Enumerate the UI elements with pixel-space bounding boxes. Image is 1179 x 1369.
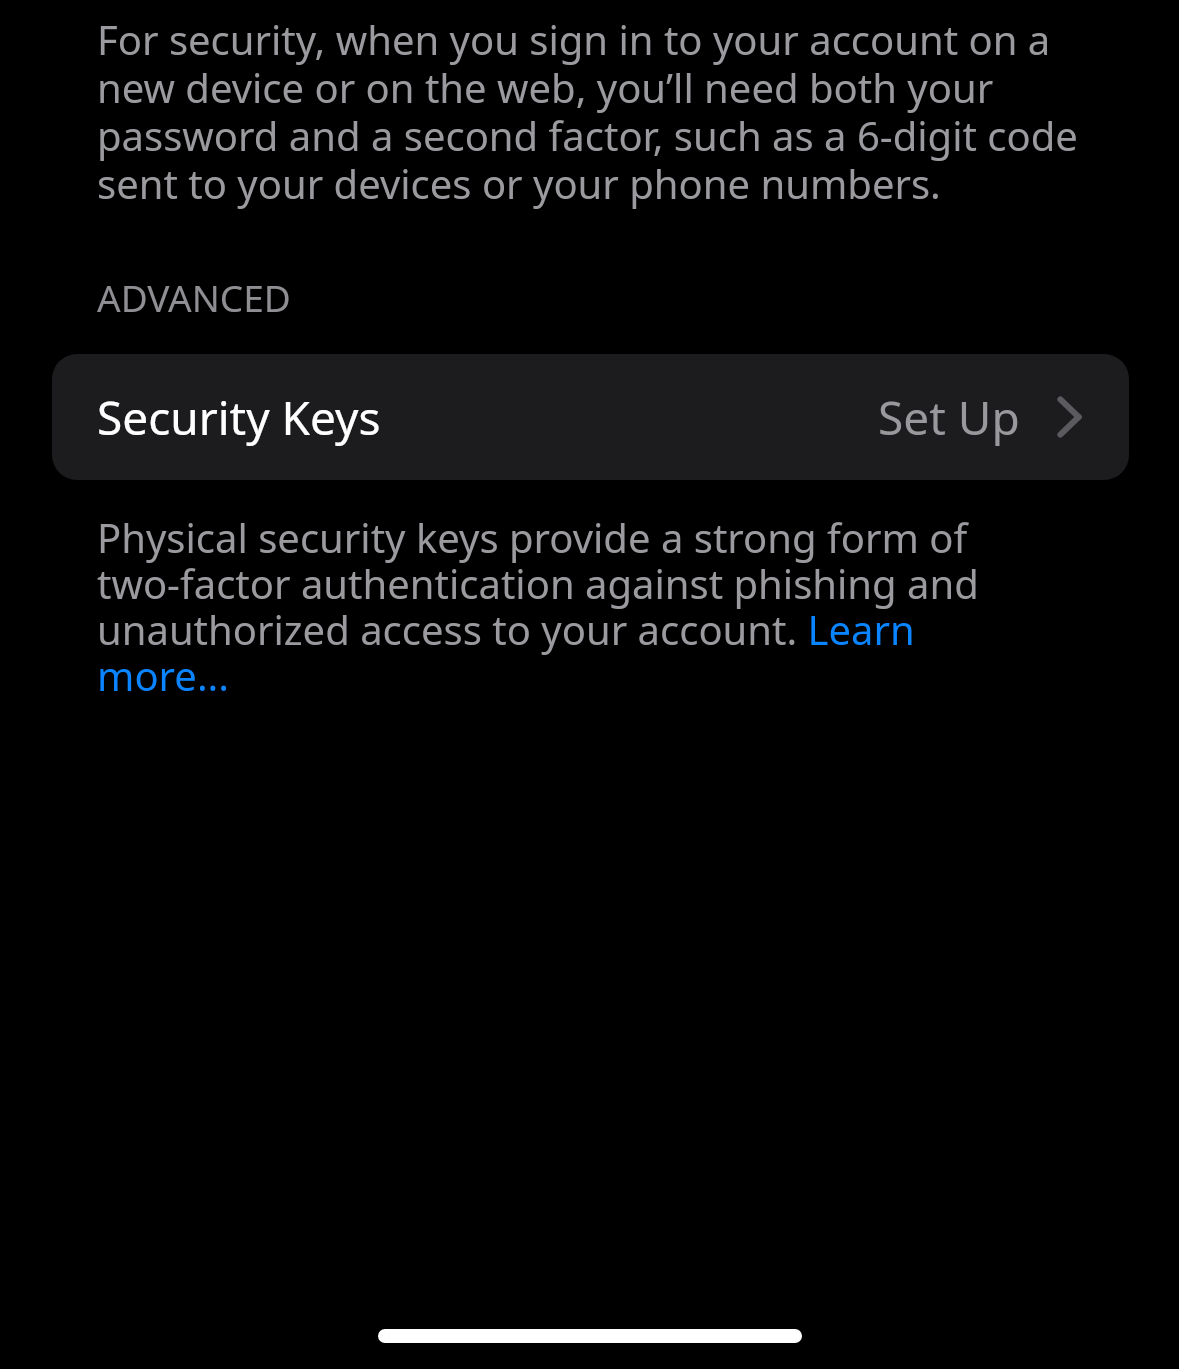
staticText: Security Keys <box>97 386 381 449</box>
staticText: For security, when you sign in to your a… <box>97 12 1079 210</box>
staticText: Set Up <box>878 386 1020 449</box>
other: Open Security Keys setup <box>1058 397 1082 437</box>
staticText: Physical security keys provide a strong … <box>97 510 1049 703</box>
button[interactable]: Security Keys <box>52 354 1129 480</box>
staticText: ADVANCED <box>97 272 291 322</box>
